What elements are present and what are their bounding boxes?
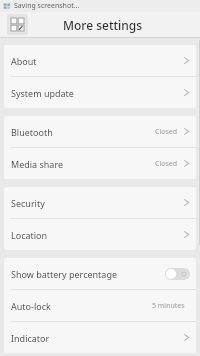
button[interactable]: Bluetooth [4, 116, 196, 147]
button[interactable]: Indicator [4, 322, 196, 353]
staticText: 5 minutes [152, 301, 185, 311]
button[interactable]: Security [4, 187, 196, 218]
staticText: Location [11, 229, 183, 241]
staticText: Bluetooth [11, 126, 155, 138]
button[interactable]: Auto-lock [4, 290, 196, 321]
staticText: Show battery percentage [11, 268, 165, 280]
button[interactable]: About [4, 45, 196, 76]
button[interactable]: Location [4, 219, 196, 250]
staticText: Closed [155, 159, 178, 169]
staticText: Indicator [11, 332, 183, 344]
staticText: System update [11, 87, 183, 99]
staticText: Security [11, 197, 183, 209]
staticText: More settings [63, 17, 143, 33]
staticText: Auto-lock [11, 300, 152, 312]
staticText: Saving screenshot... [14, 1, 80, 11]
button[interactable]: Show battery percentage [165, 268, 190, 280]
staticText: About [11, 55, 183, 67]
staticText: Closed [155, 127, 178, 137]
button[interactable]: System update [4, 77, 196, 108]
button[interactable]: Show battery percentage [4, 258, 196, 289]
button[interactable]: Apps [7, 14, 28, 35]
button[interactable]: Media share [4, 148, 196, 179]
staticText: Media share [11, 158, 155, 170]
